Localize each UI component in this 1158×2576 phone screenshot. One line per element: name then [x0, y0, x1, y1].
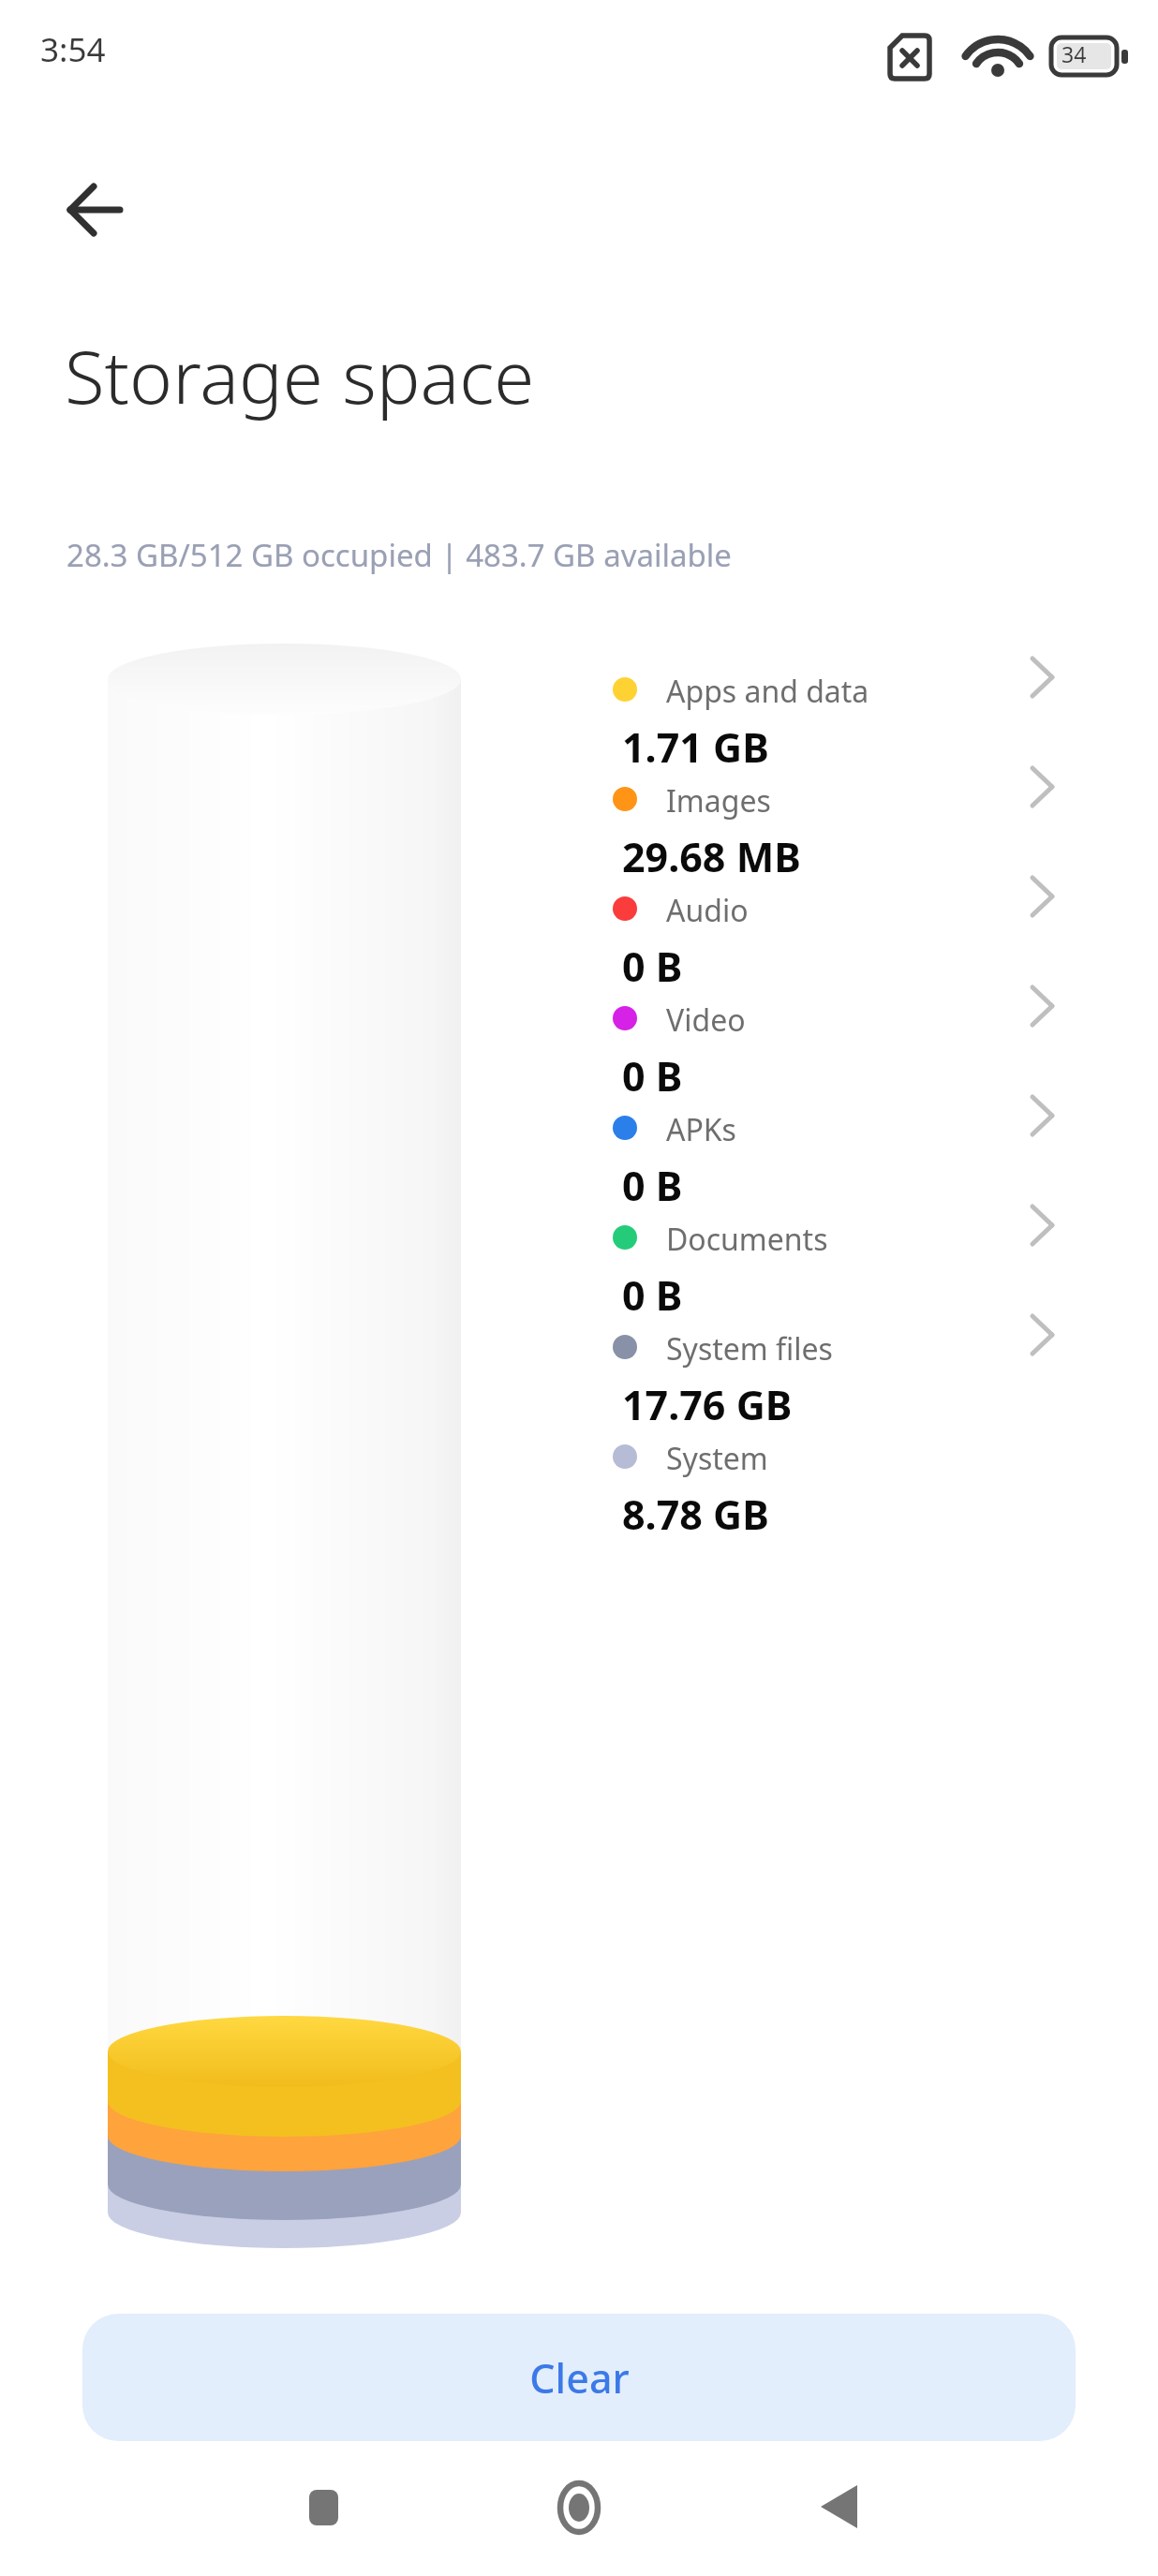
staticText: Storage space	[65, 326, 535, 425]
staticText: 17.76 GB	[622, 1377, 793, 1432]
staticText: 0 B	[622, 1158, 683, 1213]
button[interactable]: Video	[581, 975, 1106, 1085]
staticText: Clear	[529, 2350, 630, 2406]
staticText: Audio	[666, 890, 749, 931]
staticText: 0 B	[622, 1267, 683, 1323]
staticText: System	[666, 1438, 768, 1479]
staticText: Documents	[666, 1219, 828, 1260]
staticText: Apps and data	[666, 671, 869, 712]
button[interactable]: Recent apps	[251, 2459, 392, 2553]
staticText: 1.71 GB	[622, 719, 769, 775]
button[interactable]: Documents	[581, 1194, 1106, 1304]
staticText: 0 B	[622, 1048, 683, 1103]
staticText: Images	[666, 780, 771, 822]
staticText: 28.3 GB/512 GB occupied | 483.7 GB avail…	[67, 534, 732, 576]
button[interactable]: APKs	[581, 1085, 1106, 1194]
button[interactable]: System files	[581, 1304, 1106, 1414]
staticText: Video	[666, 999, 746, 1041]
button[interactable]: Images	[581, 756, 1106, 866]
staticText: System files	[666, 1328, 833, 1369]
button[interactable]: Home	[509, 2459, 649, 2553]
staticText: 0 B	[622, 939, 683, 994]
staticText: APKs	[666, 1109, 736, 1150]
staticText: 29.68 MB	[622, 829, 801, 884]
button[interactable]: Audio	[581, 866, 1106, 975]
button[interactable]: System	[581, 1414, 1106, 1523]
staticText: 3:54	[40, 27, 106, 72]
staticText: 8.78 GB	[622, 1487, 769, 1542]
staticText: 34	[1061, 39, 1087, 68]
button[interactable]: Clear	[82, 2314, 1076, 2441]
button[interactable]: Back	[37, 150, 159, 270]
button[interactable]: Apps and data	[581, 646, 1106, 756]
button[interactable]: Back	[766, 2459, 907, 2553]
